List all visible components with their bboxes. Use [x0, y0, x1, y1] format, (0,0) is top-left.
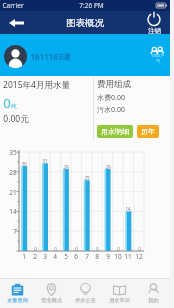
staticText: 7:26 PM [79, 1, 104, 10]
staticText: 14 [9, 207, 17, 216]
staticText: 5 [64, 252, 68, 261]
staticText: 水量查询 [7, 297, 28, 304]
staticText: 水费0.00 [97, 93, 125, 103]
staticText: 9 [106, 252, 110, 261]
button[interactable]: 用水常识 [102, 279, 136, 308]
staticText: 11 [124, 252, 132, 261]
staticText: 31 [42, 158, 48, 164]
staticText: 7 [13, 227, 17, 236]
staticText: 1 [22, 252, 26, 261]
staticText: 我的 [148, 297, 159, 304]
staticText: 2015年4月用水量 [3, 79, 70, 91]
staticText: 0 [34, 246, 37, 252]
button[interactable]: 1611163谭 [4, 45, 71, 68]
button[interactable]: 历年 [137, 125, 159, 138]
staticText: 0 [54, 246, 57, 252]
staticText: 0 [3, 94, 11, 112]
button[interactable]: Back [0, 11, 30, 34]
staticText: 费用组成 [97, 79, 131, 90]
staticText: 12 [135, 252, 143, 261]
staticText: 25 [84, 175, 90, 181]
staticText: 8 [95, 252, 99, 261]
staticText: 1611163谭 [30, 51, 71, 62]
staticText: 3 [43, 252, 47, 261]
staticText: 28 [9, 168, 17, 177]
staticText: 10 [114, 252, 122, 261]
staticText: 0 [75, 246, 78, 252]
staticText: 0 [117, 246, 120, 252]
staticText: Carrier [2, 1, 24, 10]
staticText: 29 [105, 164, 111, 170]
staticText: 污水0.00 [97, 105, 125, 115]
staticText: 用水明细 [101, 127, 129, 136]
staticText: 0 [138, 246, 141, 252]
staticText: 14 [125, 206, 131, 212]
staticText: 30 [21, 161, 27, 167]
staticText: 4 [53, 252, 57, 261]
button[interactable]: 停水公告 [68, 279, 102, 308]
button[interactable]: 我的 [136, 279, 170, 308]
staticText: 切换户号 [150, 53, 166, 63]
staticText: 历年 [141, 127, 155, 136]
staticText: 注销 [148, 27, 161, 35]
staticText: 0.00元 [3, 113, 29, 125]
staticText: 0 [96, 246, 99, 252]
staticText: 2 [33, 252, 37, 261]
button[interactable]: 营业网点 [34, 279, 68, 308]
button[interactable]: 用水明细 [97, 125, 133, 138]
staticText: 吨 [11, 103, 17, 110]
staticText: 图表概况 [66, 17, 104, 29]
staticText: 用水常识 [109, 297, 130, 304]
staticText: 停水公告 [75, 297, 96, 304]
staticText: 29 [63, 164, 69, 170]
staticText: 6 [74, 252, 78, 261]
button[interactable]: 水量查询 [0, 279, 34, 308]
staticText: 21 [9, 188, 17, 197]
staticText: 7 [85, 252, 89, 261]
staticText: 营业网点 [41, 297, 62, 304]
button[interactable]: 注销 [147, 11, 161, 34]
staticText: 35 [9, 148, 17, 157]
button[interactable]: Switch account [150, 46, 166, 62]
